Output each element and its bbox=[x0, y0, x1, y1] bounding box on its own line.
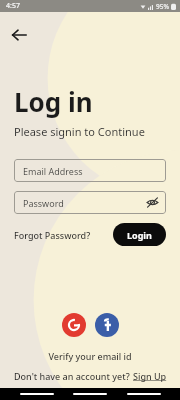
button[interactable]: Sign in with Facebook bbox=[95, 313, 119, 337]
button[interactable]: Back bbox=[8, 24, 30, 46]
button[interactable]: Login bbox=[113, 223, 166, 246]
staticText: Please signin to Continue bbox=[14, 124, 145, 139]
button[interactable]: Email Address bbox=[14, 159, 166, 182]
button[interactable]: Forgot Password? bbox=[14, 225, 91, 245]
button[interactable]: Navigation bbox=[73, 393, 107, 395]
button[interactable]: Navigation bbox=[20, 393, 54, 395]
staticText: Sign Up bbox=[133, 370, 167, 382]
staticText: 4:57 bbox=[6, 1, 20, 11]
staticText: Password bbox=[23, 197, 64, 209]
staticText: 95% bbox=[156, 2, 169, 11]
staticText: Email Address bbox=[23, 165, 83, 177]
staticText: Login bbox=[127, 229, 152, 241]
staticText: Log in bbox=[14, 84, 93, 119]
button[interactable]: Navigation bbox=[127, 393, 161, 395]
staticText: Forgot Password? bbox=[14, 229, 91, 241]
staticText: Don't have an account yet? bbox=[14, 370, 133, 382]
staticText: Verify your email id bbox=[0, 350, 180, 362]
button[interactable]: Password bbox=[14, 191, 166, 214]
button[interactable]: Sign in with Google bbox=[62, 313, 86, 337]
button[interactable]: Toggle password visibility bbox=[146, 196, 159, 209]
button[interactable]: Sign Up bbox=[133, 370, 167, 382]
